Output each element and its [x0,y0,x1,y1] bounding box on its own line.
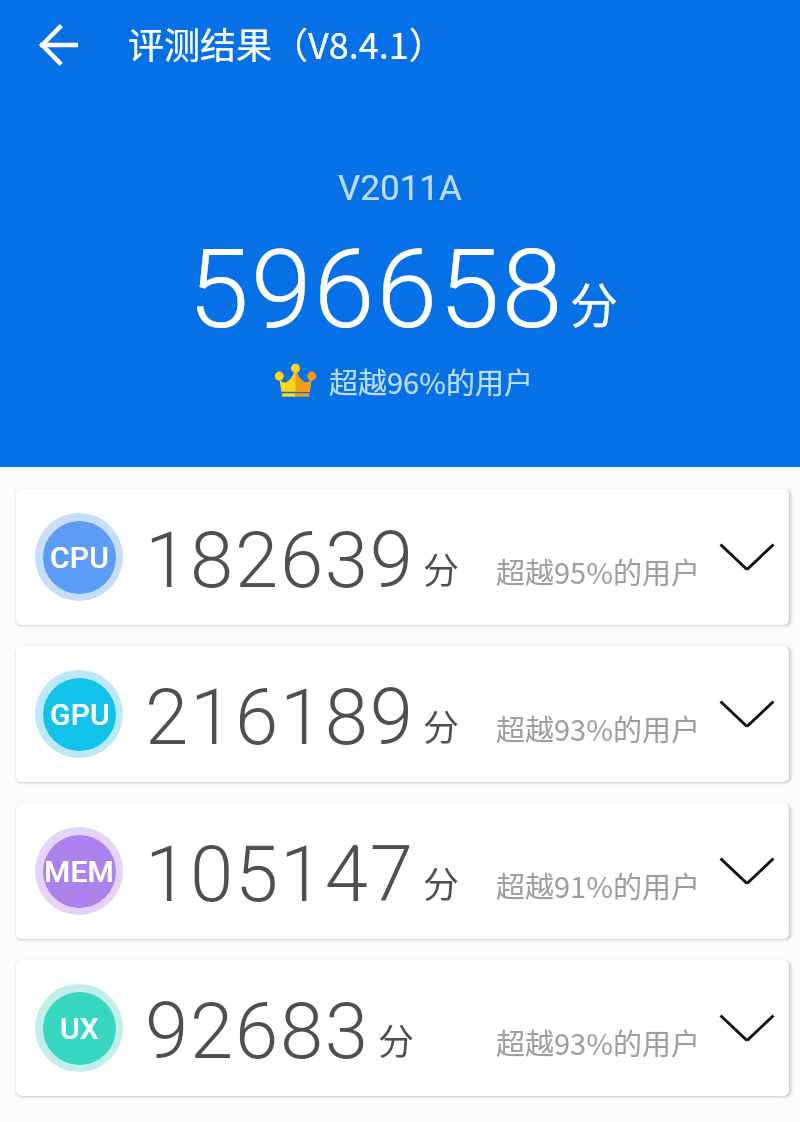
button[interactable]: MEM [16,803,789,939]
staticText: 分 [423,542,460,594]
staticText: 超越93%的用户 [496,1021,700,1063]
staticText: 92683 [145,986,370,1077]
button[interactable]: CPU [16,489,789,625]
staticText: 105147 [145,829,415,920]
button[interactable]: GPU [16,646,789,782]
button[interactable]: Back [27,13,91,77]
button[interactable]: Expand [713,523,781,591]
button[interactable]: Expand [713,994,781,1062]
button[interactable]: Expand [713,680,781,748]
staticText: V2011A [338,168,462,209]
staticText: 超越95%的用户 [496,550,700,592]
staticText: 超越91%的用户 [496,864,700,906]
staticText: 分 [570,267,619,337]
staticText: GPU [50,697,110,732]
staticText: 216189 [145,672,415,763]
button[interactable]: UX [16,960,789,1096]
staticText: 分 [423,856,460,908]
button[interactable]: Expand [713,837,781,905]
staticText: CPU [50,540,109,575]
staticText: 分 [378,1013,415,1065]
staticText: 超越93%的用户 [496,707,700,749]
staticText: MEM [44,854,115,889]
staticText: 596658 [188,225,565,354]
staticText: 182639 [145,515,415,606]
staticText: 评测结果（V8.4.1） [128,17,445,69]
staticText: UX [60,1011,99,1046]
staticText: 分 [423,699,460,751]
staticText: 超越96%的用户 [329,360,533,402]
